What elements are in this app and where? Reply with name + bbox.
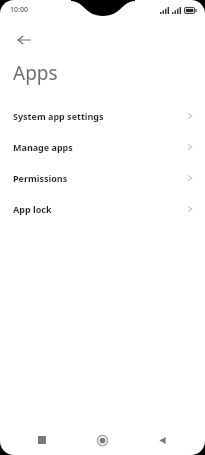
button[interactable]: Home — [88, 426, 116, 454]
staticText: App lock — [13, 203, 52, 215]
button[interactable]: Back — [148, 426, 176, 454]
staticText: Manage apps — [13, 141, 73, 153]
staticText: 10:00 — [10, 5, 28, 15]
staticText: System app settings — [13, 110, 104, 122]
staticText: Apps — [13, 60, 58, 86]
button[interactable]: System app settings — [0, 100, 205, 131]
button[interactable]: Manage apps — [0, 131, 205, 162]
button[interactable]: Recent apps — [28, 426, 56, 454]
button[interactable]: Permissions — [0, 162, 205, 193]
staticText: Permissions — [13, 172, 68, 184]
button[interactable]: Back — [8, 24, 40, 56]
button[interactable]: App lock — [0, 193, 205, 224]
